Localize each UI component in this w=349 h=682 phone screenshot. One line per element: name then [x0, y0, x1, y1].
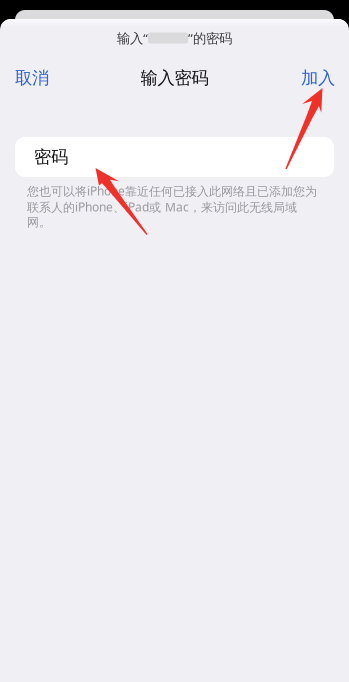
- staticText: ”的密码: [188, 29, 232, 47]
- staticText: 输入“: [117, 29, 148, 47]
- button[interactable]: 取消: [0, 56, 64, 100]
- button[interactable]: 加入: [287, 56, 349, 100]
- staticText: 取消: [15, 67, 49, 89]
- staticText: 您也可以将iPhone靠近任何已接入此网络且已添加您为联系人的iPhone、iP…: [27, 183, 317, 230]
- staticText: 加入: [301, 67, 335, 89]
- staticText: 密码: [34, 146, 68, 168]
- staticText: 输入密码: [140, 67, 208, 89]
